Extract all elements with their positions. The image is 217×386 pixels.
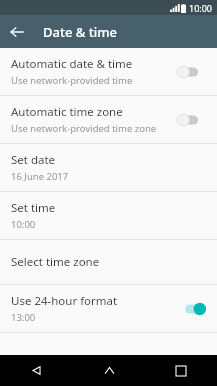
button[interactable]: Set date	[0, 144, 217, 191]
staticText: 10:00	[189, 2, 213, 14]
staticText: Use 24-hour format	[11, 293, 118, 309]
button[interactable]: Automatic time zone	[0, 96, 217, 143]
button[interactable]: Home	[73, 355, 145, 386]
staticText: 13:00	[11, 311, 36, 324]
button[interactable]: Back	[0, 355, 73, 386]
staticText: 10:00	[11, 218, 36, 231]
staticText: Date & time	[43, 23, 117, 41]
staticText: 16 June 2017	[11, 170, 69, 183]
button[interactable]: Select time zone	[0, 240, 217, 284]
staticText: Set time	[11, 200, 56, 216]
staticText: Use network-provided time	[11, 74, 133, 87]
button[interactable]: Automatic date & time	[0, 48, 217, 95]
staticText: Set date	[11, 152, 56, 168]
button[interactable]: Use 24-hour format	[0, 285, 217, 332]
button[interactable]: Set time	[0, 192, 217, 239]
staticText: Automatic time zone	[11, 104, 123, 120]
button[interactable]: Back	[0, 15, 33, 48]
staticText: Select time zone	[11, 254, 100, 270]
button[interactable]: Recent apps	[145, 355, 217, 386]
staticText: Use network-provided time zone	[11, 122, 157, 135]
staticText: Automatic date & time	[11, 56, 133, 72]
